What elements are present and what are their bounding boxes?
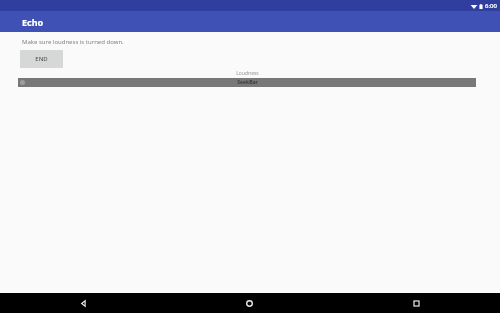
- staticText: Make sure loudness is turned down.: [22, 38, 124, 46]
- button[interactable]: Home: [166, 293, 333, 313]
- staticText: Loudness: [236, 70, 259, 77]
- staticText: Echo: [22, 16, 44, 28]
- staticText: SeekBar: [237, 79, 258, 86]
- button[interactable]: Recent apps: [333, 293, 500, 313]
- button[interactable]: END: [20, 50, 63, 68]
- staticText: END: [35, 55, 48, 63]
- staticText: 6:00: [485, 2, 497, 10]
- button[interactable]: Back: [0, 293, 166, 313]
- button[interactable]: Loudness seek bar: [18, 78, 476, 87]
